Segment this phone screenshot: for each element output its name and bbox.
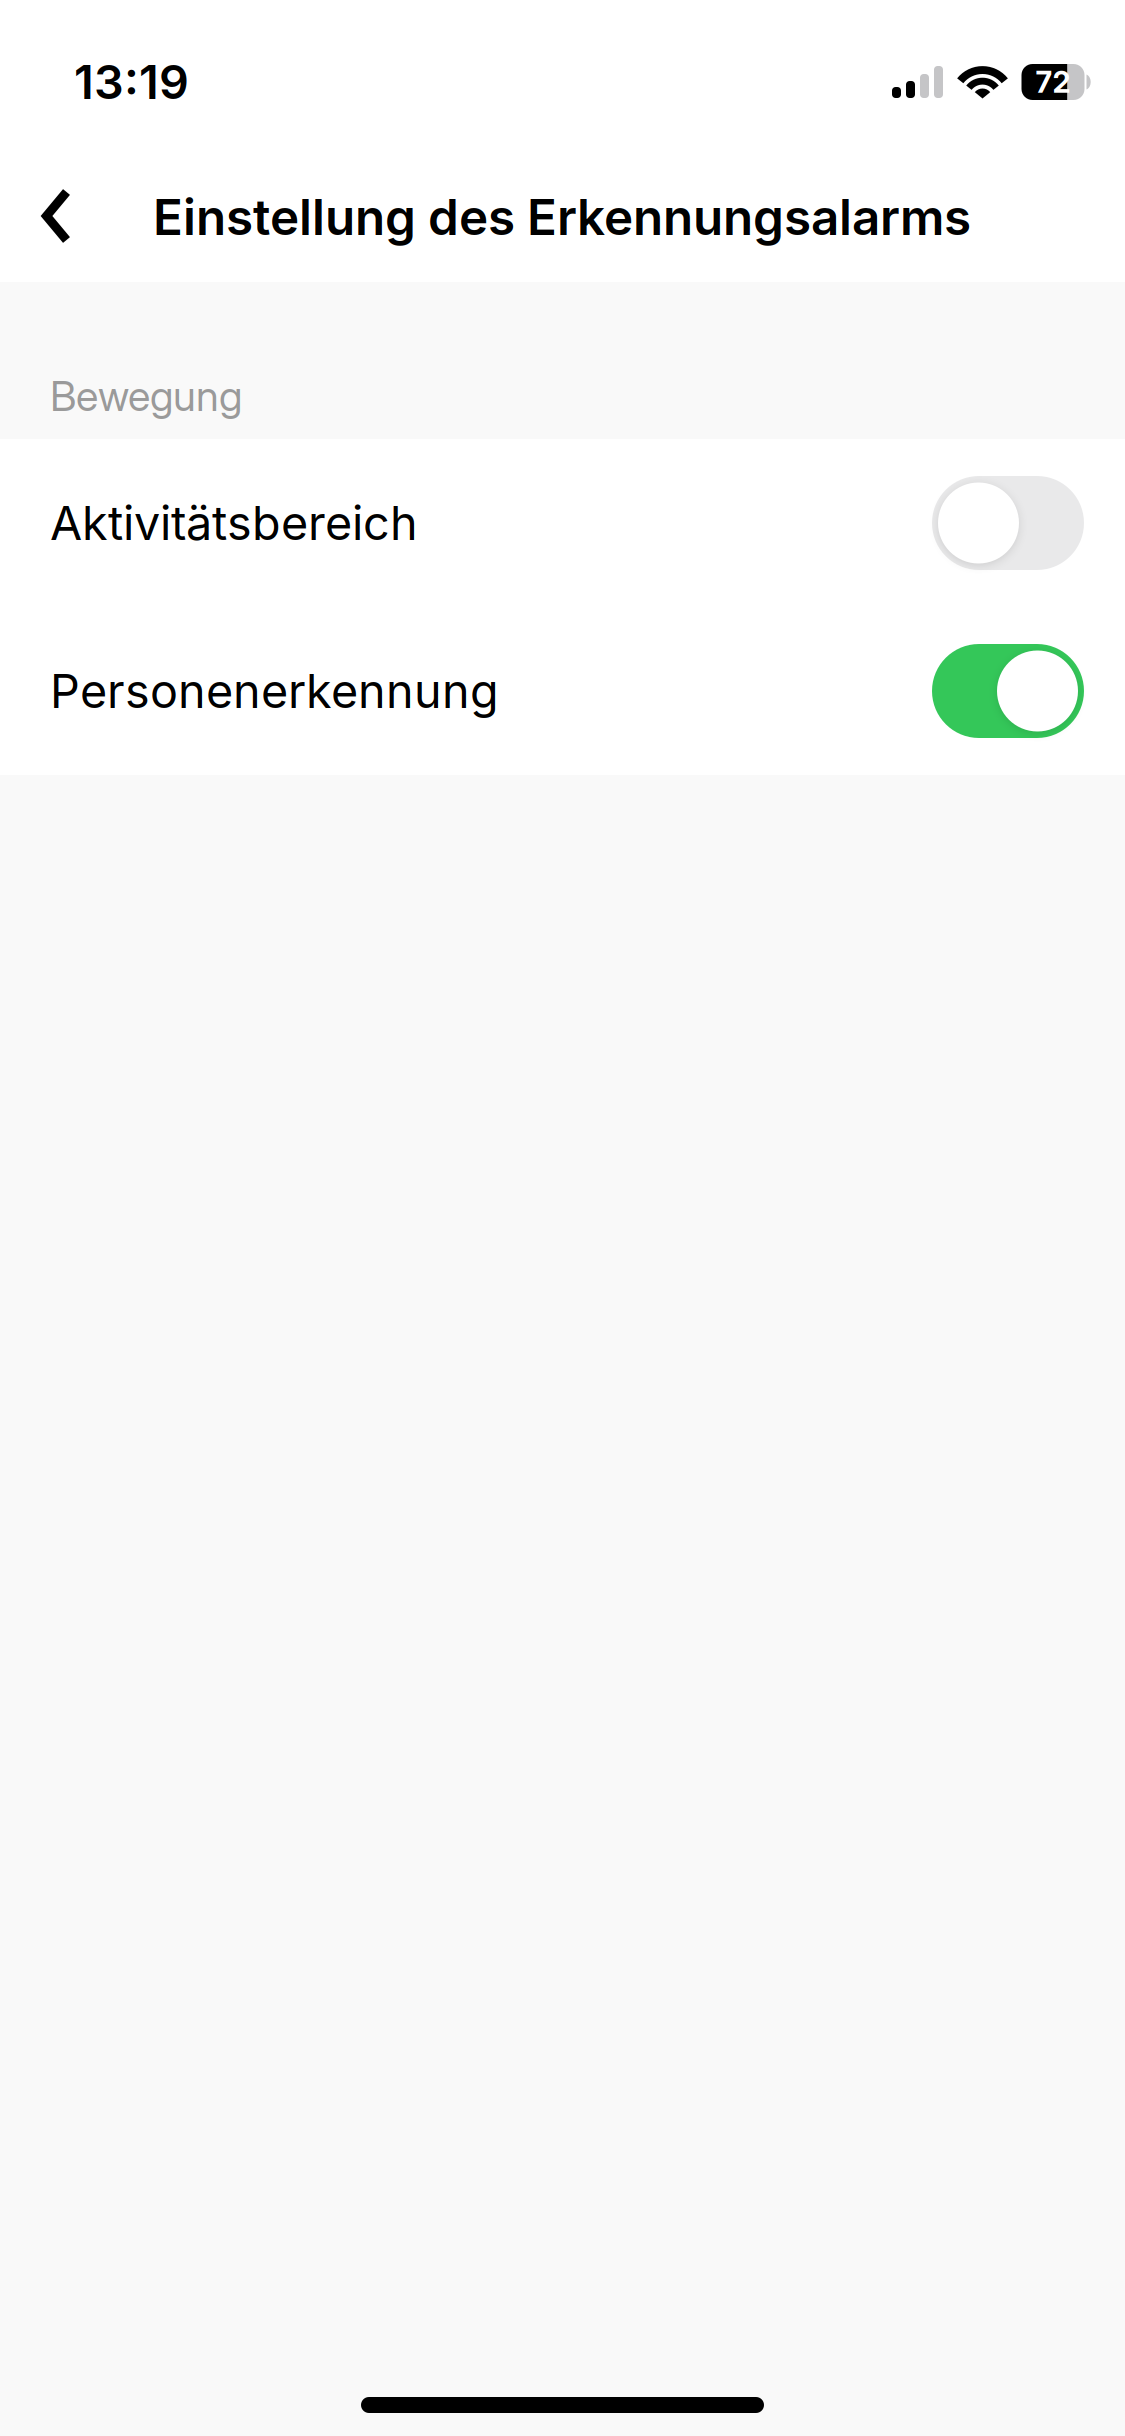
button[interactable]: Personenerkennung (0, 607, 1125, 775)
staticText: 13:19 (74, 54, 189, 110)
staticText: Personenerkennung (50, 663, 499, 719)
staticText: Einstellung des Erkennungsalarms (153, 187, 971, 247)
staticText: 72 (1035, 64, 1070, 100)
button[interactable]: Aktivitätsbereich (0, 439, 1125, 607)
staticText: Aktivitätsbereich (50, 495, 418, 551)
button[interactable]: Back (0, 132, 155, 282)
staticText: Bewegung (50, 371, 242, 421)
